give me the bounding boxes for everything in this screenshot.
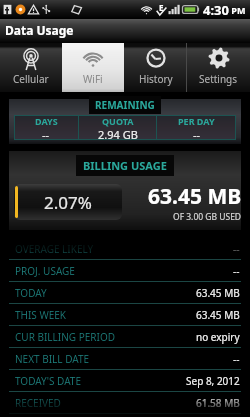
staticText: 4:30	[203, 1, 229, 19]
staticText: DAYS	[35, 115, 58, 127]
staticText: OF 3.00 GB USED	[173, 211, 242, 223]
button[interactable]: TODAY	[0, 282, 250, 304]
staticText: no expiry	[196, 330, 240, 344]
staticText: 2.94 GB	[98, 127, 138, 140]
staticText: PM	[229, 4, 246, 16]
staticText: BILLING USAGE	[83, 158, 167, 173]
staticText: --	[193, 127, 201, 140]
button[interactable]: OVERAGE LIKELY	[0, 238, 250, 260]
button[interactable]: THIS WEEK	[0, 304, 250, 326]
staticText: NEXT BILL DATE	[15, 352, 90, 366]
staticText: Sep 8, 2012	[186, 374, 240, 388]
staticText: Settings	[199, 72, 238, 86]
button[interactable]: CUR BILLING PERIOD	[0, 326, 250, 348]
staticText: --	[42, 127, 50, 140]
staticText: PROJ. USAGE	[15, 264, 75, 278]
staticText: 63.45 MB	[148, 182, 242, 211]
button[interactable]: History tab	[124, 43, 187, 92]
staticText: 61.58 MB	[196, 396, 240, 410]
staticText: 63.45 MB	[196, 286, 240, 300]
staticText: Cellular	[13, 72, 49, 86]
button[interactable]: TODAY'S DATE	[0, 370, 250, 392]
staticText: 63.45 MB	[196, 308, 240, 322]
staticText: CUR BILLING PERIOD	[15, 330, 116, 344]
staticText: OVERAGE LIKELY	[15, 242, 94, 256]
staticText: History	[139, 72, 173, 86]
staticText: REMAINING	[95, 98, 155, 112]
staticText: E	[159, 2, 164, 13]
staticText: WiFi	[83, 72, 103, 86]
staticText: --	[233, 352, 240, 366]
staticText: Data Usage	[5, 22, 74, 38]
button[interactable]: WiFi tab	[62, 43, 124, 92]
staticText: TODAY'S DATE	[15, 374, 81, 388]
staticText: PER DAY	[178, 115, 215, 127]
staticText: 2.07%	[44, 191, 92, 214]
button[interactable]: PROJ. USAGE	[0, 260, 250, 282]
button[interactable]: NEXT BILL DATE	[0, 348, 250, 370]
staticText: RECEIVED	[15, 396, 61, 410]
button[interactable]: RECEIVED	[0, 392, 250, 414]
staticText: THIS WEEK	[15, 308, 67, 322]
staticText: --	[233, 264, 240, 278]
staticText: --	[233, 242, 240, 256]
staticText: TODAY	[15, 286, 47, 300]
button[interactable]: Cellular tab	[0, 43, 62, 92]
staticText: QUOTA	[102, 115, 134, 127]
button[interactable]: Settings tab	[187, 43, 250, 92]
